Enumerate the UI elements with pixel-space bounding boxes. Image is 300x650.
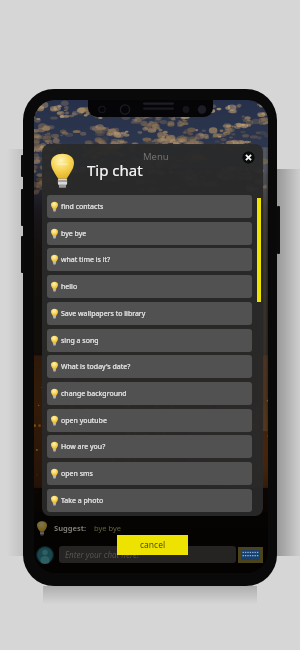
button[interactable]: change background: [47, 382, 252, 405]
staticText: hello: [61, 282, 78, 292]
staticText: Take a photo: [61, 496, 104, 506]
staticText: open youtube: [61, 416, 107, 426]
staticText: sing a song: [61, 336, 99, 346]
staticText: How are you?: [61, 442, 106, 452]
button[interactable]: sing a song: [47, 329, 252, 352]
button[interactable]: Save wallpapers to library: [47, 302, 252, 325]
button[interactable]: Take a photo: [47, 489, 252, 512]
staticText: open sms: [61, 469, 93, 479]
button[interactable]: What is today's date?: [47, 355, 252, 378]
button[interactable]: Send message: [238, 547, 263, 563]
staticText: change background: [61, 389, 127, 399]
button[interactable]: hello: [47, 275, 252, 298]
staticText: bye bye: [94, 523, 121, 533]
button[interactable]: Close dialog: [242, 151, 255, 164]
staticText: Enter your chat here!: [65, 549, 140, 560]
button[interactable]: How are you?: [47, 435, 252, 458]
button[interactable]: Enter your chat here!: [59, 546, 236, 563]
staticText: cancel: [140, 539, 166, 551]
button[interactable]: bye bye: [47, 222, 252, 245]
staticText: what time is it?: [61, 255, 111, 265]
button[interactable]: open youtube: [47, 409, 252, 432]
staticText: Save wallpapers to library: [61, 309, 146, 319]
staticText: Suggest:: [54, 523, 87, 533]
button[interactable]: cancel: [117, 535, 188, 555]
button[interactable]: Profile picture: [36, 546, 54, 564]
staticText: Tip chat: [87, 160, 143, 180]
button[interactable]: open sms: [47, 462, 252, 485]
button[interactable]: find contacts: [47, 195, 252, 218]
button[interactable]: what time is it?: [47, 248, 252, 271]
button[interactable]: Suggest:: [37, 520, 121, 536]
staticText: Menu: [143, 150, 169, 163]
staticText: bye bye: [61, 229, 87, 239]
staticText: What is today's date?: [61, 362, 131, 372]
staticText: find contacts: [61, 202, 104, 212]
